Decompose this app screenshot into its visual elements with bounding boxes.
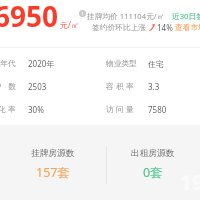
staticText: 2503 [28, 81, 47, 92]
staticText: 出租房源数 [131, 148, 175, 159]
staticText: 建筑年代 [0, 59, 16, 69]
other: 价格说明 [79, 10, 86, 17]
staticText: 近30日签约 [172, 11, 200, 22]
staticText: 元/㎡ [60, 19, 79, 30]
staticText: 物业类型 [106, 59, 137, 69]
staticText: 14% [157, 22, 173, 33]
staticText: 查看市场 [175, 23, 200, 33]
staticText: 户数 [0, 82, 23, 92]
staticText: 挂牌房源数 [31, 148, 75, 159]
staticText: 30% [28, 104, 44, 115]
staticText: 访问量 [106, 105, 136, 115]
staticText: 容积率 [106, 82, 136, 92]
staticText: 住宅 [148, 59, 164, 69]
staticText: 6950 [0, 0, 59, 35]
button[interactable]: 挂牌房源数 [0, 125, 106, 200]
staticText: 7580 [148, 104, 167, 115]
button[interactable]: 出租房源数 [106, 125, 200, 200]
staticText: 绿化率 [0, 105, 18, 115]
staticText: 挂牌均价 111104元/㎡ [87, 11, 165, 22]
staticText: 0套 [143, 164, 163, 181]
staticText: 157套 [36, 164, 70, 181]
staticText: 签约价环比上涨 [92, 23, 146, 33]
staticText: 2020年 [28, 58, 55, 69]
staticText: 3.3 [148, 81, 160, 92]
